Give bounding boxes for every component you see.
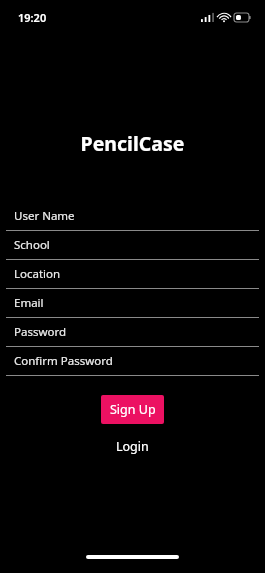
staticText: Sign Up — [110, 401, 156, 418]
button[interactable]: User Name — [6, 202, 259, 231]
button[interactable]: School — [6, 231, 259, 260]
button[interactable]: Confirm Password — [6, 347, 259, 376]
staticText: School — [14, 237, 50, 253]
button[interactable]: Email — [6, 289, 259, 318]
staticText: Confirm Password — [14, 353, 113, 369]
staticText: Location — [14, 266, 61, 282]
other: Home indicator — [86, 555, 179, 559]
button[interactable]: Login — [102, 435, 163, 458]
button[interactable]: Password — [6, 318, 259, 347]
staticText: Password — [14, 324, 67, 340]
staticText: Email — [14, 295, 44, 311]
staticText: Login — [116, 438, 149, 455]
staticText: PencilCase — [0, 130, 265, 157]
button[interactable]: Sign Up — [101, 395, 164, 424]
button[interactable]: Location — [6, 260, 259, 289]
staticText: User Name — [14, 208, 75, 224]
staticText: 19:20 — [18, 10, 47, 25]
